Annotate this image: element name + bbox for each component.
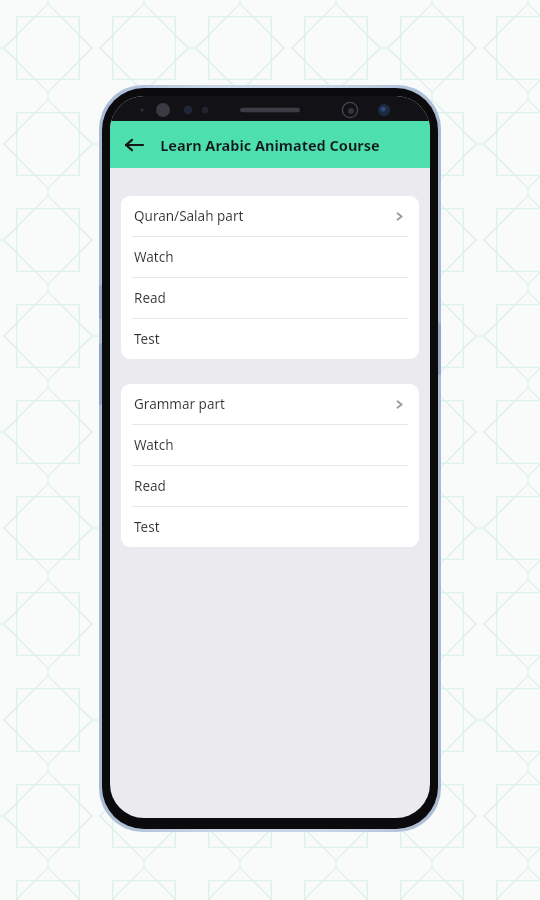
- button[interactable]: Grammar part: [121, 384, 419, 424]
- staticText: Quran/Salah part: [134, 207, 244, 225]
- staticText: Read: [134, 477, 166, 495]
- button[interactable]: Quran/Salah part: [121, 196, 419, 236]
- staticText: Test: [134, 330, 160, 348]
- staticText: Grammar part: [134, 395, 225, 413]
- button[interactable]: Read: [121, 278, 419, 318]
- staticText: Learn Arabic Animated Course: [154, 135, 386, 155]
- button[interactable]: Watch: [121, 237, 419, 277]
- staticText: Watch: [134, 248, 174, 266]
- staticText: Test: [134, 518, 160, 536]
- button[interactable]: Back: [114, 125, 154, 165]
- button[interactable]: Read: [121, 466, 419, 506]
- staticText: Watch: [134, 436, 174, 454]
- button[interactable]: Test: [121, 507, 419, 547]
- button[interactable]: Watch: [121, 425, 419, 465]
- staticText: Read: [134, 289, 166, 307]
- button[interactable]: Test: [121, 319, 419, 359]
